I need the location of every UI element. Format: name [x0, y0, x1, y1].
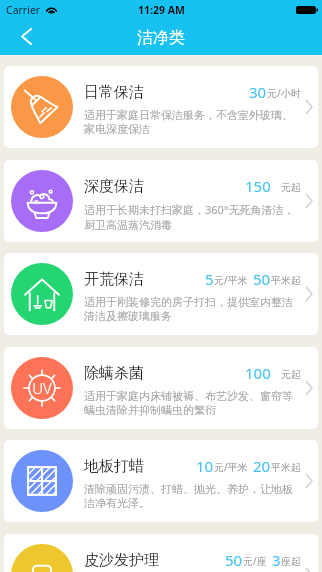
staticText: 元/平米: [214, 273, 248, 287]
staticText: 适用于家庭内床铺被褥、布艺沙发、窗帘等螨虫清除并抑制螨虫的繁衍: [84, 389, 301, 417]
staticText: 30: [249, 82, 267, 102]
staticText: 50: [225, 550, 243, 570]
button[interactable]: 深度保洁: [4, 160, 318, 242]
staticText: 深度保洁: [84, 177, 144, 196]
staticText: 平米起: [271, 274, 301, 287]
staticText: 皮沙发护理: [84, 551, 159, 570]
staticText: 10: [196, 456, 214, 476]
button[interactable]: 皮沙发护理: [4, 534, 318, 572]
staticText: 座起: [281, 555, 301, 568]
staticText: 除螨杀菌: [84, 364, 144, 383]
staticText: 3: [272, 550, 281, 570]
staticText: 清除顽固污渍、打蜡、抛光、养护，让地板洁净有光泽。: [84, 482, 301, 510]
staticText: 地板打蜡: [84, 457, 144, 476]
staticText: 平米起: [271, 461, 301, 474]
staticText: 元/座: [243, 554, 267, 568]
button[interactable]: 开荒保洁: [4, 253, 318, 335]
button[interactable]: UV: [4, 347, 318, 429]
staticText: 日常保洁: [84, 83, 144, 102]
button[interactable]: 日常保洁: [4, 66, 318, 148]
staticText: 150: [245, 176, 271, 196]
staticText: 适用于家庭日常保洁服务，不含室外玻璃、家电深度保洁: [84, 108, 301, 136]
staticText: 20: [253, 456, 271, 476]
staticText: 开荒保洁: [84, 270, 144, 289]
staticText: 100: [245, 363, 271, 383]
staticText: 5: [205, 269, 214, 289]
staticText: UV: [32, 378, 52, 398]
staticText: 适用于长期未打扫家庭，360°无死角清洁，厨卫高温蒸汽消毒: [84, 202, 301, 232]
staticText: 元/小时: [267, 86, 301, 100]
staticText: 11:29 AM: [138, 3, 185, 17]
staticText: Carrier: [6, 3, 41, 17]
staticText: 适用于刚装修完的房子打扫，提供室内整洁清洁及擦玻璃服务: [84, 295, 301, 323]
button[interactable]: 地板打蜡: [4, 440, 318, 522]
button[interactable]: Back: [13, 23, 39, 49]
staticText: 元起: [281, 181, 301, 194]
staticText: 元/平米: [214, 460, 248, 474]
staticText: 50: [253, 269, 271, 289]
staticText: 元起: [281, 368, 301, 381]
staticText: 洁净类: [137, 28, 185, 48]
